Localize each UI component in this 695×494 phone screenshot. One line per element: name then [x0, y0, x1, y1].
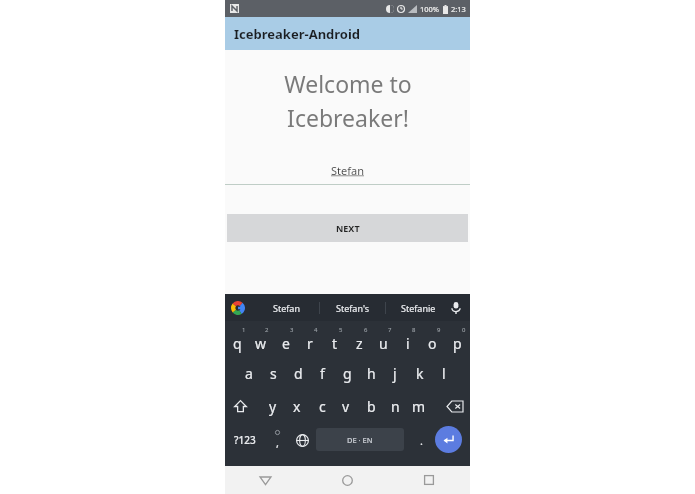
button[interactable]: 1 [225, 321, 249, 357]
button[interactable]: Change language [290, 423, 314, 457]
staticText: Stefan [331, 163, 364, 178]
button[interactable]: Recents [388, 466, 470, 494]
staticText: o [428, 334, 437, 353]
button[interactable]: s [261, 357, 285, 390]
button[interactable]: x [285, 390, 309, 423]
staticText: s [270, 364, 277, 383]
staticText: Welcome to [284, 68, 412, 99]
button[interactable]: 3 [274, 321, 298, 357]
staticText: Stefan's [336, 302, 369, 314]
button[interactable]: Back [225, 466, 306, 494]
staticText: j [393, 364, 397, 383]
button[interactable]: Stefanie [386, 294, 451, 321]
staticText: g [343, 364, 352, 383]
staticText: . [420, 433, 423, 448]
button[interactable]: Period [410, 423, 432, 457]
staticText: k [416, 364, 424, 383]
staticText: Stefanie [401, 302, 436, 314]
button[interactable]: d [286, 357, 310, 390]
button[interactable]: Stefan [253, 294, 319, 321]
staticText: q [233, 334, 242, 353]
staticText: l [442, 364, 446, 383]
staticText: c [319, 397, 326, 416]
staticText: r [307, 334, 313, 353]
button[interactable]: 7 [371, 321, 395, 357]
staticText: 6 [364, 326, 368, 334]
button[interactable]: h [359, 357, 383, 390]
button[interactable]: Stefan's [320, 294, 385, 321]
button[interactable]: k [408, 357, 432, 390]
staticText: 4 [314, 326, 318, 334]
button[interactable]: 9 [420, 321, 444, 357]
button[interactable]: NEXT [227, 214, 468, 242]
button[interactable]: f [310, 357, 334, 390]
button[interactable]: c [310, 390, 334, 423]
staticText: z [356, 334, 363, 353]
staticText: 7 [388, 326, 392, 334]
staticText: 100% [420, 4, 440, 14]
staticText: a [245, 364, 253, 383]
button[interactable]: Enter [435, 426, 462, 453]
staticText: 5 [339, 326, 343, 334]
staticText: ?123 [234, 433, 256, 447]
button[interactable]: m [407, 390, 431, 423]
button[interactable]: y [261, 390, 285, 423]
staticText: , [276, 435, 279, 450]
button[interactable]: a [237, 357, 261, 390]
button[interactable]: 0 [445, 321, 469, 357]
staticText: NEXT [336, 222, 360, 234]
button[interactable]: v [334, 390, 358, 423]
button[interactable]: b [359, 390, 383, 423]
button[interactable]: 5 [323, 321, 347, 357]
staticText: f [320, 364, 325, 383]
staticText: DE · EN [347, 435, 373, 445]
button[interactable]: Stefan [225, 161, 470, 179]
staticText: n [391, 397, 400, 416]
button[interactable]: 6 [347, 321, 371, 357]
staticText: b [367, 397, 376, 416]
staticText: d [294, 364, 303, 383]
button[interactable]: 2 [249, 321, 273, 357]
staticText: u [379, 334, 388, 353]
staticText: p [453, 334, 462, 353]
staticText: i [406, 334, 410, 353]
staticText: 0 [462, 326, 466, 334]
staticText: x [293, 397, 301, 416]
staticText: 8 [412, 326, 416, 334]
staticText: 2:13 [451, 4, 466, 14]
staticText: Icebreaker! [287, 102, 409, 133]
staticText: h [367, 364, 376, 383]
staticText: e [282, 334, 290, 353]
staticText: 9 [437, 326, 441, 334]
staticText: m [412, 397, 426, 416]
staticText: y [269, 397, 277, 416]
staticText: v [342, 397, 350, 416]
button[interactable]: Comma [266, 423, 288, 457]
button[interactable]: Icebreaker-Android [225, 17, 470, 50]
button[interactable]: Home [306, 466, 388, 494]
button[interactable]: 4 [298, 321, 322, 357]
other: Google [231, 301, 245, 315]
button[interactable]: g [335, 357, 359, 390]
staticText: Icebreaker-Android [234, 25, 361, 43]
button[interactable]: l [432, 357, 456, 390]
button[interactable]: DE · EN [316, 428, 404, 451]
button[interactable]: Shift [227, 390, 253, 423]
staticText: 2 [265, 326, 269, 334]
button[interactable]: 8 [396, 321, 420, 357]
button[interactable]: j [383, 357, 407, 390]
button[interactable]: ?123 [227, 423, 263, 457]
staticText: Stefan [273, 302, 300, 314]
button[interactable]: Voice input [448, 300, 464, 316]
button[interactable]: n [383, 390, 407, 423]
staticText: w [255, 334, 267, 353]
staticText: 3 [290, 326, 294, 334]
button[interactable]: Backspace [442, 390, 468, 423]
staticText: 1 [242, 326, 246, 334]
staticText: t [332, 334, 338, 353]
